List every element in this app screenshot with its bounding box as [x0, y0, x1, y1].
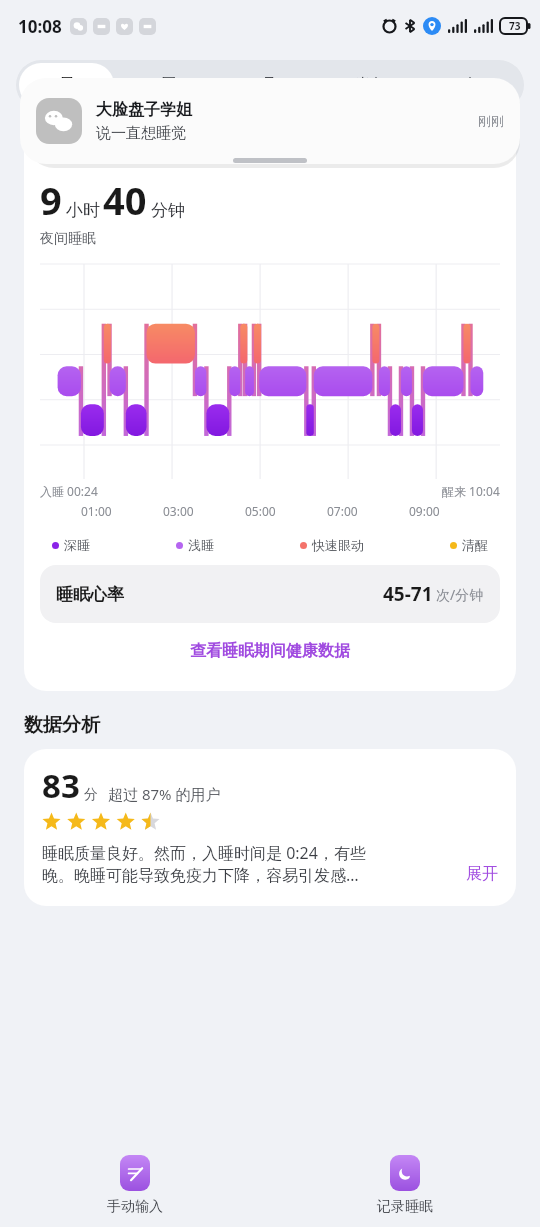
other: 记录睡眠: [390, 1155, 420, 1191]
staticText: 09:00: [409, 503, 440, 519]
staticText: 查看睡眠期间健康数据: [190, 641, 350, 661]
other: 手动输入: [120, 1155, 150, 1191]
staticText: 醒来 10:04: [442, 483, 500, 499]
staticText: 大脸盘子学姐: [96, 100, 192, 120]
staticText: 03:00: [163, 503, 194, 519]
staticText: 手动输入: [107, 1198, 163, 1216]
staticText: 05:00: [245, 503, 276, 519]
button[interactable]: 周: [120, 63, 215, 107]
staticText: 晚。晚睡可能导致免疫力下降，容易引发感…: [42, 864, 466, 886]
staticText: 11月25日 周二: [40, 140, 145, 162]
button[interactable]: 手动输入: [0, 1143, 270, 1227]
staticText: 45-71: [383, 581, 433, 607]
button[interactable]: 展开: [466, 864, 498, 884]
staticText: 说一直想睡觉: [96, 124, 186, 143]
staticText: 半年: [355, 75, 387, 95]
staticText: 快速眼动: [312, 537, 364, 553]
staticText: 83: [42, 763, 80, 808]
staticText: 清醒: [462, 537, 488, 553]
staticText: 睡眠心率: [56, 584, 124, 605]
staticText: 记录睡眠: [377, 1198, 433, 1216]
staticText: 夜间睡眠: [40, 230, 96, 248]
button[interactable]: 大脸盘子学姐: [20, 78, 520, 164]
staticText: 9: [40, 174, 62, 226]
button[interactable]: 年: [425, 63, 521, 107]
button[interactable]: 查看睡眠期间健康数据: [40, 641, 500, 661]
staticText: 分钟: [151, 200, 185, 221]
button[interactable]: 日: [19, 63, 114, 107]
staticText: 睡眠质量良好。然而，入睡时间是 0:24，有些: [42, 842, 366, 864]
staticText: 深睡: [64, 537, 90, 553]
staticText: 年: [465, 75, 481, 95]
staticText: 月: [261, 75, 277, 95]
staticText: 07:00: [327, 503, 358, 519]
button[interactable]: 11月25日 周二: [40, 140, 163, 162]
staticText: 数据分析: [24, 713, 100, 737]
staticText: 刚刚: [478, 113, 504, 129]
button[interactable]: 半年: [323, 63, 419, 107]
staticText: 周: [160, 75, 176, 95]
staticText: 40: [103, 174, 147, 226]
button[interactable]: 睡眠心率: [40, 565, 500, 623]
staticText: 01:00: [81, 503, 112, 519]
staticText: 分: [84, 786, 98, 804]
staticText: 次/分钟: [436, 585, 484, 604]
staticText: 小时: [66, 200, 100, 221]
staticText: 日: [59, 75, 75, 95]
staticText: 入睡 00:24: [40, 483, 98, 499]
staticText: 超过 87% 的用户: [108, 784, 221, 804]
staticText: 73: [509, 19, 521, 33]
staticText: 10:08: [18, 15, 62, 38]
staticText: 浅睡: [188, 537, 214, 553]
button[interactable]: 月: [221, 63, 317, 107]
button[interactable]: 记录睡眠: [270, 1143, 540, 1227]
